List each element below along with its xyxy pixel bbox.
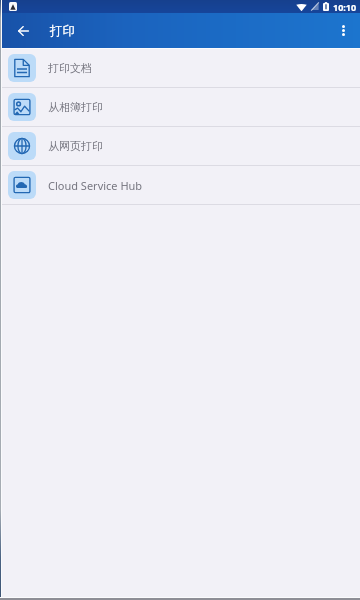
button[interactable]: 打印文档 bbox=[0, 49, 360, 87]
button[interactable]: Cloud Service Hub bbox=[0, 166, 360, 204]
staticText: 打印文档 bbox=[48, 61, 92, 75]
staticText: 从相簿打印 bbox=[48, 100, 103, 114]
staticText: Cloud Service Hub bbox=[48, 178, 143, 193]
staticText: 10:10 bbox=[333, 1, 357, 13]
button[interactable]: 从相簿打印 bbox=[0, 88, 360, 126]
staticText: 从网页打印 bbox=[48, 139, 103, 153]
button[interactable]: Back bbox=[0, 13, 46, 48]
staticText: 打印 bbox=[50, 23, 75, 39]
button[interactable]: More options bbox=[328, 13, 358, 48]
button[interactable]: 从网页打印 bbox=[0, 127, 360, 165]
